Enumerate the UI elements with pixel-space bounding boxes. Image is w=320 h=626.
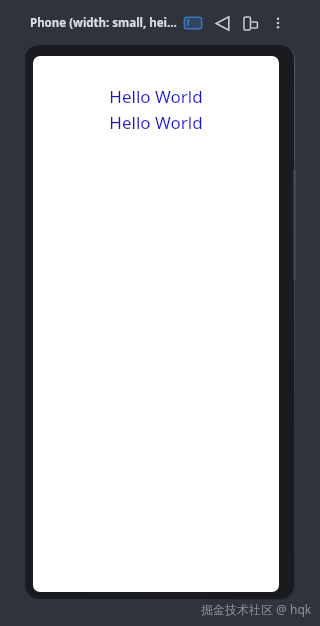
- button[interactable]: Device size: [183, 13, 203, 33]
- staticText: Hello World: [109, 85, 203, 108]
- staticText: Phone (width: small, hei…: [30, 15, 177, 31]
- staticText: Hello World: [109, 111, 203, 134]
- button[interactable]: Back: [211, 12, 233, 34]
- staticText: 掘金技术社区 @ hqk: [201, 601, 312, 617]
- button[interactable]: More options: [267, 12, 289, 34]
- button[interactable]: Rotate device: [239, 12, 261, 34]
